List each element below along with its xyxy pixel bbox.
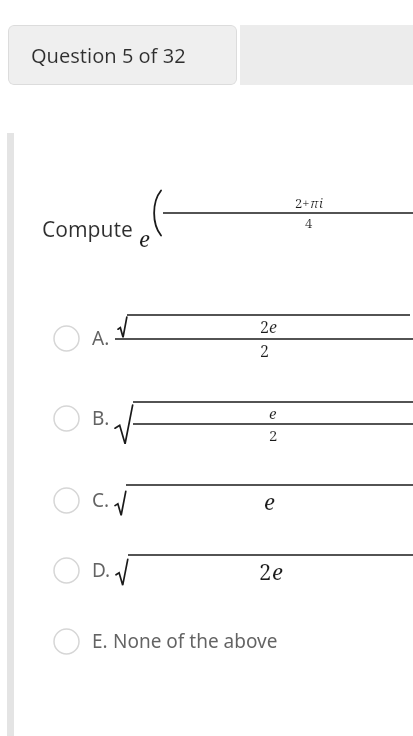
staticText: i <box>319 194 323 212</box>
staticText: 2 <box>260 316 269 338</box>
staticText: e <box>264 486 275 516</box>
button[interactable]: C. <box>0 468 413 532</box>
staticText: e <box>269 316 277 338</box>
staticText: C. <box>92 487 110 513</box>
staticText: E. <box>92 628 108 654</box>
staticText: 2 <box>260 340 269 362</box>
staticText: e <box>139 223 150 253</box>
staticText: None of the above <box>113 628 278 654</box>
staticText: 2 <box>259 556 272 586</box>
staticText: 2 <box>269 425 278 445</box>
button[interactable]: B. <box>0 380 413 456</box>
button[interactable]: D. <box>0 538 413 602</box>
staticText: D. <box>92 557 111 583</box>
button[interactable]: Question 5 of 32 <box>8 25 237 85</box>
staticText: Question 5 of 32 <box>31 42 186 69</box>
staticText: π <box>310 194 319 212</box>
button[interactable]: A. <box>0 298 413 378</box>
staticText: 2+ <box>295 194 310 212</box>
staticText: B. <box>92 405 110 431</box>
staticText: e <box>269 403 277 423</box>
staticText: 4 <box>305 214 313 232</box>
button[interactable]: E. <box>0 610 413 672</box>
staticText: A. <box>92 325 110 351</box>
staticText: Compute <box>42 215 139 244</box>
staticText: e <box>272 556 283 586</box>
